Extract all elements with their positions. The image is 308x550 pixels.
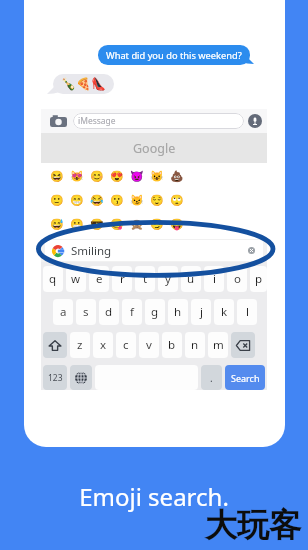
staticText: m [213,337,224,353]
button[interactable]: q [43,266,63,292]
staticText: x [100,337,107,353]
button[interactable]: m [208,332,228,358]
button[interactable]: Voice message [248,114,262,128]
button[interactable]: u [181,266,201,292]
button[interactable]: n [185,332,205,358]
button[interactable]: a [53,299,73,325]
button[interactable]: y [158,266,178,292]
button[interactable]: 😬 [67,212,87,236]
staticText: 😎 [90,218,104,231]
button[interactable]: 😼 [127,188,147,212]
button[interactable]: 🙄 [167,188,187,212]
button[interactable]: d [99,299,119,325]
button[interactable]: 😊 [87,164,107,188]
button[interactable]: 😍 [107,164,127,188]
staticText: 😋 [110,218,124,231]
button[interactable]: 123 [43,365,67,390]
button[interactable]: i [204,266,224,292]
button[interactable]: Change keyboard [70,365,92,390]
button[interactable]: 😆 [47,164,67,188]
button[interactable]: Backspace [231,332,255,358]
staticText: t [143,271,148,287]
button[interactable]: 🍾🍕👠 [53,74,114,94]
staticText: 123 [48,372,63,384]
button[interactable]: c [116,332,136,358]
staticText: 😼 [130,194,144,207]
button[interactable]: 😁 [67,188,87,212]
staticText: b [168,337,176,353]
staticText: i [213,271,216,287]
button[interactable]: 😌 [147,188,167,212]
button[interactable]: 😺 [147,164,167,188]
button[interactable]: Camera [49,112,67,130]
button[interactable]: 😻 [67,164,87,188]
button[interactable]: j [191,299,211,325]
staticText: iMessage [78,115,116,127]
staticText: e [96,271,103,287]
staticText: 大玩客 [205,505,301,545]
staticText: 😗 [110,194,124,207]
button[interactable]: iMessage [73,113,244,129]
button[interactable]: Shift [43,332,67,358]
button[interactable]: 😂 [87,188,107,212]
button[interactable]: s [76,299,96,325]
button[interactable]: w [66,266,86,292]
staticText: 😺 [150,170,164,183]
button[interactable]: . [201,365,222,390]
button[interactable]: k [214,299,234,325]
button[interactable]: 😏 [147,212,167,236]
button[interactable]: 🙂 [47,188,67,212]
button[interactable]: b [162,332,182,358]
staticText: . [210,371,213,385]
button[interactable]: Smiling [45,240,263,261]
button[interactable]: v [139,332,159,358]
button[interactable]: f [122,299,142,325]
staticText: 💩 [170,170,184,183]
staticText: h [174,304,182,320]
button[interactable]: Search [225,365,265,390]
staticText: g [151,304,159,320]
staticText: 🙊 [130,218,144,231]
button[interactable]: r [112,266,132,292]
button[interactable]: h [168,299,188,325]
staticText: Emoji search. [0,480,308,513]
staticText: v [146,337,152,353]
staticText: r [120,271,125,287]
staticText: d [105,304,113,320]
button[interactable]: l [237,299,257,325]
staticText: Smiling [71,243,112,259]
staticText: Google [133,140,176,157]
button[interactable]: 😗 [107,188,127,212]
button[interactable]: 😜 [167,212,187,236]
button[interactable]: o [227,266,247,292]
staticText: f [130,304,134,320]
button[interactable]: 😋 [107,212,127,236]
staticText: 😌 [150,194,164,207]
staticText: 😏 [150,218,164,231]
button[interactable]: t [135,266,155,292]
button[interactable]: What did you do this weekend? [98,45,250,65]
button[interactable]: e [89,266,109,292]
button[interactable]: 😎 [87,212,107,236]
button[interactable]: x [93,332,113,358]
staticText: y [165,271,171,287]
staticText: z [77,337,83,353]
staticText: 😻 [70,170,84,183]
staticText: l [246,304,249,320]
staticText: n [191,337,199,353]
button[interactable]: 💩 [167,164,187,188]
button[interactable]: 😅 [47,212,67,236]
staticText: a [60,304,67,320]
button[interactable]: Clear [246,245,257,256]
staticText: 😬 [70,218,84,231]
button[interactable]: g [145,299,165,325]
staticText: What did you do this weekend? [106,49,242,62]
button[interactable]: p [250,266,267,292]
button[interactable]: z [70,332,90,358]
button[interactable]: 😈 [127,164,147,188]
staticText: 🙄 [170,194,184,207]
staticText: 😊 [90,170,104,183]
staticText: 😁 [70,194,84,207]
button[interactable]: 🙊 [127,212,147,236]
